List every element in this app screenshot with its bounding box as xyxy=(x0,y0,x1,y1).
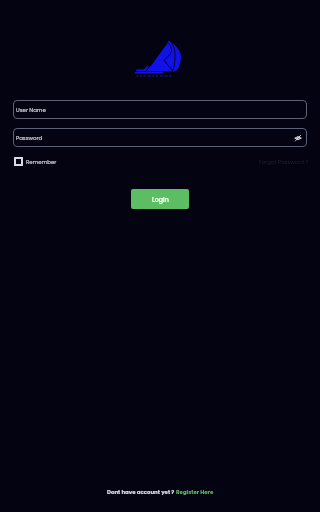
button[interactable]: Login xyxy=(131,189,189,209)
button[interactable]: Forgot Password ? xyxy=(259,158,309,166)
button[interactable]: Password xyxy=(13,128,307,147)
button[interactable]: Remember xyxy=(14,156,57,167)
staticText: Password xyxy=(16,134,43,142)
button[interactable]: User Name xyxy=(13,100,307,119)
staticText: Dont have account yet ? xyxy=(107,488,176,496)
staticText: Remember xyxy=(26,158,57,166)
staticText: User Name xyxy=(16,106,46,114)
staticText: Login xyxy=(152,195,169,204)
button[interactable]: Register Here xyxy=(176,488,214,496)
button[interactable]: Toggle password visibility xyxy=(294,134,302,142)
